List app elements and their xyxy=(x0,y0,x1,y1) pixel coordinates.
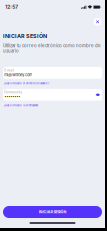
staticText: ¿Has olvidado el nombre de usuario? xyxy=(4,82,49,85)
button[interactable]: ¿Has olvidado el nombre de usuario? xyxy=(3,79,102,88)
staticText: INICIAR SESIÓN xyxy=(38,210,66,214)
staticText: E-mail xyxy=(4,69,14,72)
button[interactable]: INICIAR SESIÓN xyxy=(3,206,102,218)
staticText: •••••••• xyxy=(4,94,20,99)
staticText: Utilizar tu correo electrónico como nomb… xyxy=(3,43,101,53)
staticText: 12:57 xyxy=(5,4,18,10)
button[interactable]: ¿Has olvidado la contraseña? xyxy=(3,101,102,109)
staticText: INICIAR SESIÓN xyxy=(3,33,47,39)
staticText: mi@wifihey.com xyxy=(4,72,32,77)
staticText: ¿Has olvidado la contraseña? xyxy=(4,104,38,107)
button[interactable]: Cerrar xyxy=(92,16,104,28)
staticText: Contraseña xyxy=(4,90,22,94)
